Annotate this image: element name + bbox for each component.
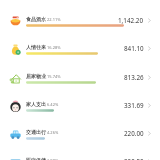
staticText: 813.26	[124, 73, 144, 82]
staticText: 220.00	[124, 129, 144, 138]
staticText: 食品酒水	[26, 16, 46, 22]
staticText: 居家物业	[26, 73, 46, 79]
staticText: 医疗保健	[26, 157, 46, 160]
button[interactable]: 人情往来	[0, 35, 160, 63]
button[interactable]: 食品酒水	[0, 7, 160, 35]
staticText: 16.28%	[47, 45, 61, 50]
staticText: 22.11%	[47, 17, 61, 22]
staticText: 1,142.20	[118, 16, 144, 25]
staticText: 841.10	[124, 44, 144, 53]
staticText: 15.74%	[47, 74, 61, 79]
button[interactable]: 医疗保健	[0, 148, 160, 160]
button[interactable]: 居家物业	[0, 64, 160, 92]
staticText: 331.69	[124, 101, 144, 110]
button[interactable]: 交通出行	[0, 120, 160, 148]
staticText: 家人支出	[26, 101, 46, 107]
staticText: 3.88%	[47, 158, 59, 160]
staticText: 交通出行	[26, 129, 46, 135]
staticText: 6.42%	[47, 102, 59, 107]
staticText: 4.26%	[47, 130, 59, 135]
staticText: 人情往来	[26, 44, 46, 50]
button[interactable]: 家人支出	[0, 92, 160, 120]
staticText: 200.50	[124, 157, 144, 160]
